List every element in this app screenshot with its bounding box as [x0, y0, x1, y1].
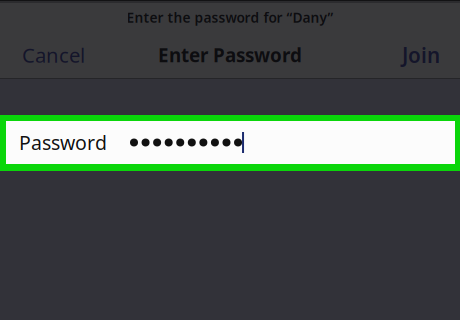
staticText: Enter Password [158, 42, 302, 68]
staticText: Join [402, 41, 440, 69]
button[interactable]: Password [0, 115, 460, 171]
button[interactable]: Join [386, 32, 460, 78]
button[interactable]: Cancel [0, 32, 101, 78]
staticText: Cancel [22, 41, 85, 69]
staticText: Password [19, 129, 107, 156]
staticText: Enter the password for “Dany” [126, 8, 333, 27]
